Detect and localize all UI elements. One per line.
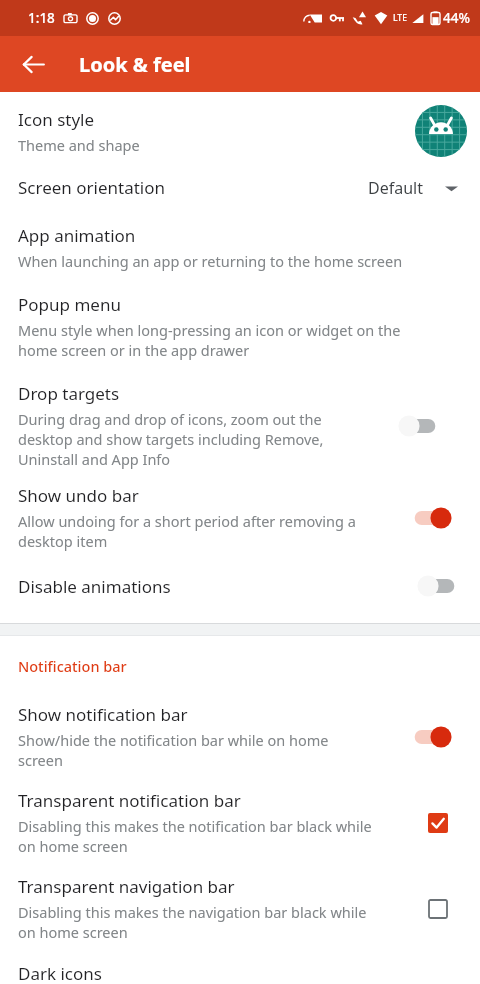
button[interactable]: Show undo bar: [0, 484, 480, 551]
staticText: Disable animations: [18, 575, 414, 598]
staticText: Show notification bar: [18, 703, 188, 726]
button[interactable]: App animation: [0, 224, 480, 271]
button[interactable]: Switch on: [407, 502, 455, 534]
button[interactable]: Transparent navigation bar: [0, 875, 480, 942]
button[interactable]: Drop targets: [0, 382, 480, 469]
staticText: Menu style when long-pressing an icon or…: [18, 320, 401, 360]
staticText: Allow undoing for a short period after r…: [18, 511, 356, 551]
button[interactable]: Screen orientation: [0, 176, 480, 199]
staticText: LTE: [393, 12, 407, 24]
button[interactable]: Show notification bar: [0, 703, 480, 770]
button[interactable]: Transparent notification bar: [0, 789, 480, 856]
staticText: 44%: [443, 9, 470, 27]
staticText: Show/hide the notification bar while on …: [18, 730, 329, 770]
staticText: During drag and drop of icons, zoom out …: [18, 409, 324, 469]
button[interactable]: Unchecked: [420, 891, 456, 927]
staticText: Icon style: [18, 108, 95, 131]
button[interactable]: Back: [11, 42, 55, 86]
button[interactable]: Switch on: [407, 721, 455, 753]
staticText: Disabling this makes the notification ba…: [18, 816, 372, 856]
button[interactable]: Icon style: [0, 105, 480, 157]
button[interactable]: Popup menu: [0, 293, 480, 360]
button[interactable]: Checked: [420, 805, 456, 841]
button[interactable]: Switch off: [414, 570, 462, 602]
button[interactable]: Switch off: [395, 410, 443, 442]
staticText: When launching an app or returning to th…: [18, 251, 403, 271]
staticText: Notification bar: [18, 656, 127, 676]
staticText: Theme and shape: [18, 135, 140, 155]
staticText: Transparent navigation bar: [18, 875, 235, 898]
staticText: Disabling this makes the navigation bar …: [18, 902, 367, 942]
staticText: Show undo bar: [18, 484, 139, 507]
staticText: Default: [368, 177, 423, 199]
button[interactable]: Disable animations: [0, 570, 480, 602]
other: Icon style preview: [415, 105, 467, 157]
button[interactable]: Change orientation: [440, 177, 462, 199]
staticText: Look & feel: [79, 51, 191, 78]
staticText: Transparent notification bar: [18, 789, 241, 812]
staticText: App animation: [18, 224, 136, 247]
staticText: Drop targets: [18, 382, 120, 405]
staticText: Dark icons: [18, 962, 102, 984]
staticText: 1:18: [28, 9, 55, 27]
staticText: Popup menu: [18, 293, 121, 316]
staticText: Screen orientation: [18, 176, 368, 199]
